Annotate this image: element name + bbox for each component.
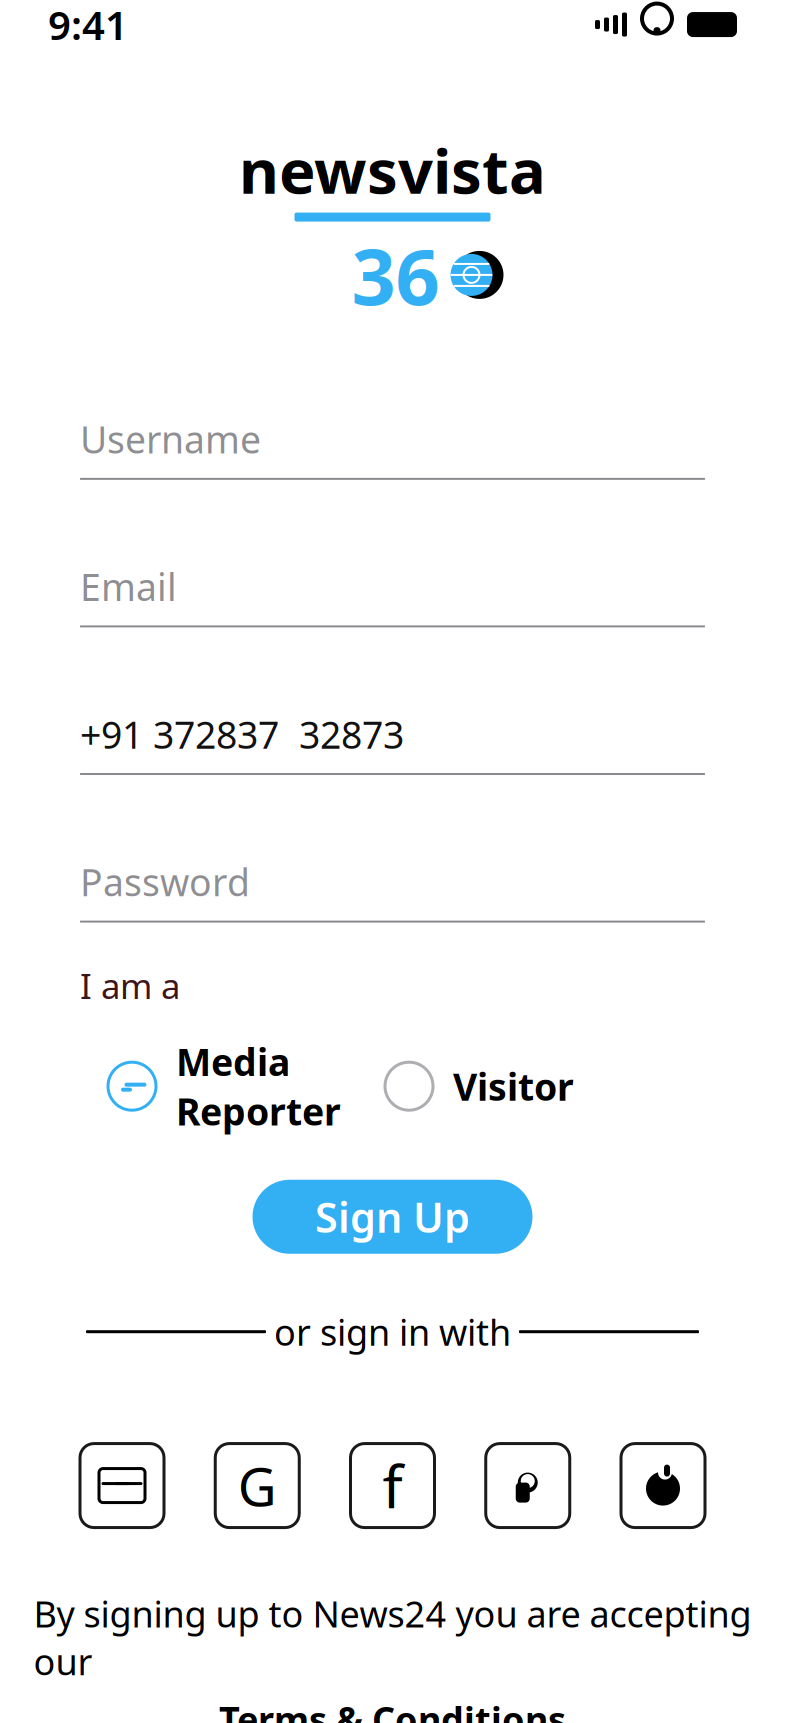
staticText: Email <box>80 562 177 611</box>
staticText: Terms & Conditions <box>219 1695 566 1723</box>
staticText: 9:41 <box>48 0 128 51</box>
button[interactable]: Terms & Conditions <box>219 1695 566 1723</box>
staticText: Username <box>80 414 261 464</box>
staticText: I am a <box>80 963 180 1009</box>
staticText: By signing up to News24 you are acceptin… <box>33 1590 751 1685</box>
staticText: Media Reporter <box>176 1037 341 1136</box>
staticText: newsvista <box>239 129 546 210</box>
button[interactable]: Sign in with Twitter <box>486 1444 570 1528</box>
button[interactable]: Sign in with Apple <box>621 1444 705 1528</box>
button[interactable]: Visitor <box>385 1061 574 1111</box>
staticText: Sign Up <box>315 1189 470 1244</box>
staticText: f <box>382 1447 402 1524</box>
staticText: Password <box>80 857 250 907</box>
button[interactable]: Sign in with Facebook <box>350 1444 434 1528</box>
button[interactable]: Sign Up <box>252 1180 532 1254</box>
staticText: +91 372837 32873 <box>80 709 404 759</box>
staticText: or sign in with <box>274 1308 511 1356</box>
button[interactable]: Sign in with Google <box>215 1444 299 1528</box>
staticText: 36 <box>351 224 439 326</box>
button[interactable]: Media Reporter <box>108 1037 341 1136</box>
staticText: Visitor <box>453 1061 574 1111</box>
button[interactable]: Sign in with email <box>80 1444 164 1528</box>
staticText: G <box>238 1450 277 1521</box>
